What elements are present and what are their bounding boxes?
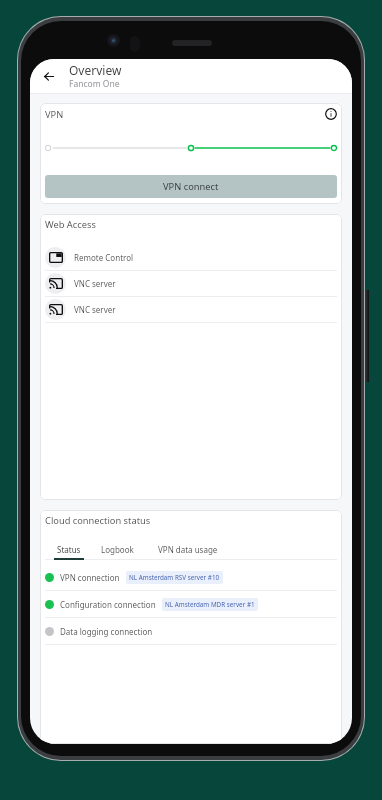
staticText: Fancom One — [69, 78, 120, 90]
staticText: Configuration connection — [60, 599, 156, 610]
button[interactable]: VNC server — [40, 297, 342, 322]
button[interactable]: VPN data usage — [155, 544, 221, 560]
button[interactable]: Data logging connection — [40, 618, 342, 644]
button[interactable]: Configuration connection — [40, 591, 342, 617]
staticText: VNC server — [74, 278, 116, 289]
button[interactable]: VPN connection — [40, 564, 342, 590]
button[interactable]: VNC server — [40, 271, 342, 296]
staticText: Cloud connection status — [45, 514, 151, 527]
button[interactable]: Logbook — [98, 544, 137, 560]
staticText: Status — [57, 544, 81, 555]
staticText: VPN data usage — [158, 544, 218, 555]
button[interactable]: VPN connect — [45, 175, 337, 198]
staticText: NL Amsterdam RSV server #10 — [129, 573, 220, 582]
button[interactable]: Status — [54, 544, 84, 560]
button[interactable]: Back — [38, 65, 60, 87]
staticText: Data logging connection — [60, 626, 153, 637]
staticText: Overview — [69, 62, 122, 78]
staticText: NL Amsterdam MDR server #1 — [165, 600, 255, 609]
staticText: VNC server — [74, 304, 116, 315]
staticText: Web Access — [45, 218, 96, 231]
button[interactable]: Remote Control — [40, 245, 342, 270]
staticText: VPN connection — [60, 572, 120, 583]
staticText: Remote Control — [74, 252, 134, 263]
staticText: VPN — [45, 108, 64, 121]
staticText: VPN connect — [163, 180, 219, 193]
button[interactable]: Info — [324, 107, 338, 121]
staticText: Logbook — [101, 544, 134, 555]
